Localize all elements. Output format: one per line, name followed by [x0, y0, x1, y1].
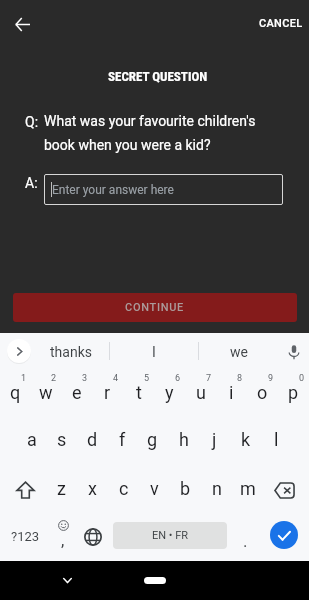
staticText: a [27, 429, 37, 450]
button[interactable]: CONTINUE [13, 293, 297, 322]
staticText: Enter your answer here [52, 183, 174, 197]
staticText: we [230, 344, 248, 360]
staticText: . [243, 531, 248, 551]
button[interactable]: Enter [262, 511, 309, 562]
button[interactable]: Comma, emoji [50, 511, 76, 562]
staticText: c [119, 478, 129, 499]
button[interactable]: 1 [0, 366, 30, 413]
staticText: What was your favourite children's book … [44, 113, 262, 153]
button[interactable]: thanks [35, 333, 106, 371]
staticText: w [39, 382, 53, 403]
staticText: 7 [206, 373, 212, 384]
button[interactable]: k [230, 416, 261, 462]
staticText: s [57, 429, 67, 450]
staticText: A: [25, 175, 38, 191]
button[interactable]: Shift [0, 465, 46, 511]
button[interactable]: d [77, 416, 107, 462]
button[interactable]: . [230, 511, 260, 562]
staticText: 6 [175, 373, 181, 384]
staticText: j [212, 429, 217, 450]
button[interactable]: Enter your answer here [44, 174, 283, 205]
staticText: I [152, 344, 156, 360]
button[interactable]: 0 [278, 366, 309, 413]
staticText: u [196, 382, 206, 403]
button[interactable]: s [47, 416, 77, 462]
staticText: h [179, 429, 189, 450]
button[interactable]: l [261, 416, 292, 462]
staticText: v [150, 478, 159, 499]
staticText: 0 [299, 373, 305, 384]
staticText: n [212, 478, 222, 499]
staticText: SECRET QUESTION [108, 69, 208, 84]
staticText: r [104, 382, 111, 403]
staticText: ?123 [11, 529, 40, 544]
button[interactable]: n [201, 465, 232, 511]
button[interactable]: m [232, 465, 263, 511]
staticText: y [165, 382, 174, 403]
staticText: CANCEL [259, 17, 303, 30]
button[interactable]: we [199, 333, 278, 371]
button[interactable]: b [170, 465, 201, 511]
staticText: l [274, 429, 279, 450]
button[interactable]: Change language [76, 511, 110, 562]
staticText: thanks [50, 344, 92, 360]
button[interactable]: EN • FR [113, 522, 227, 549]
staticText: k [241, 429, 251, 450]
button[interactable]: 9 [247, 366, 278, 413]
staticText: t [136, 382, 142, 403]
staticText: 8 [237, 373, 243, 384]
button[interactable]: z [46, 465, 77, 511]
staticText: 2 [51, 373, 57, 384]
staticText: , [61, 530, 65, 550]
staticText: o [257, 382, 268, 403]
button[interactable]: f [107, 416, 137, 462]
staticText: z [57, 478, 66, 499]
button[interactable]: 4 [92, 366, 123, 413]
staticText: 1 [21, 373, 27, 384]
button[interactable]: I [110, 333, 198, 371]
staticText: 5 [144, 373, 150, 384]
staticText: m [240, 478, 256, 499]
button[interactable]: h [168, 416, 199, 462]
button[interactable]: CANCEL [256, 14, 306, 32]
button[interactable]: 6 [154, 366, 185, 413]
staticText: b [180, 478, 191, 499]
staticText: p [288, 382, 299, 403]
button[interactable]: 8 [216, 366, 247, 413]
staticText: e [72, 382, 82, 403]
staticText: 9 [268, 373, 274, 384]
staticText: g [147, 429, 158, 450]
button[interactable]: 2 [30, 366, 61, 413]
staticText: 3 [82, 373, 88, 384]
staticText: d [87, 429, 98, 450]
button[interactable]: ?123 [0, 511, 50, 562]
button[interactable]: Hide keyboard [52, 561, 83, 600]
button[interactable]: x [77, 465, 108, 511]
button[interactable]: a [17, 416, 47, 462]
button[interactable]: 7 [185, 366, 216, 413]
button[interactable]: Voice input [278, 333, 309, 371]
button[interactable]: c [108, 465, 139, 511]
button[interactable]: v [139, 465, 170, 511]
button[interactable]: Back [8, 10, 36, 38]
staticText: f [119, 429, 126, 450]
button[interactable]: 3 [61, 366, 92, 413]
staticText: q [10, 382, 21, 403]
staticText: i [229, 382, 234, 403]
staticText: x [88, 478, 97, 499]
button[interactable]: 5 [123, 366, 154, 413]
staticText: 4 [113, 373, 119, 384]
button[interactable]: j [199, 416, 230, 462]
button[interactable]: More suggestions [7, 339, 31, 363]
staticText: Q: [25, 114, 39, 130]
button[interactable]: Backspace [263, 465, 309, 511]
staticText: CONTINUE [125, 301, 185, 314]
button[interactable]: g [137, 416, 168, 462]
staticText: EN • FR [152, 529, 189, 542]
